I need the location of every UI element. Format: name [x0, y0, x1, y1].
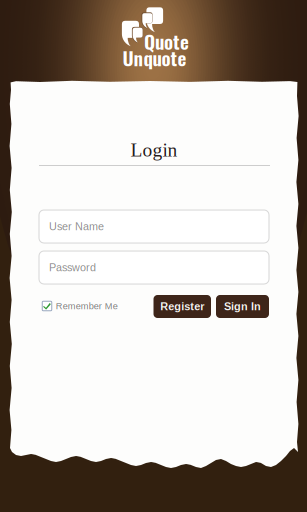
staticText: Login	[130, 139, 177, 161]
staticText: Remember Me	[56, 301, 118, 311]
button[interactable]: Register	[153, 295, 211, 318]
staticText: Quote	[144, 27, 189, 55]
staticText: Password	[49, 261, 96, 274]
staticText: User Name	[49, 220, 104, 233]
button[interactable]: Sign In	[216, 295, 269, 318]
staticText: Unquote	[122, 43, 186, 72]
staticText: Register	[160, 300, 204, 313]
button[interactable]: Remember Me	[47, 297, 124, 315]
staticText: Sign In	[224, 300, 261, 313]
